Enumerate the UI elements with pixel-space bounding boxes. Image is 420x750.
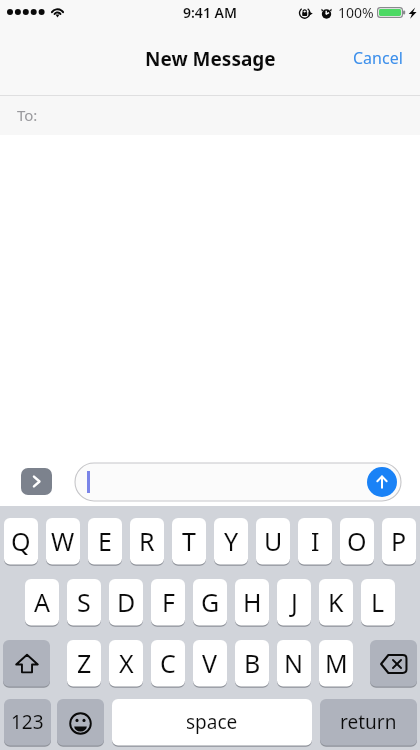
button[interactable]: 123 bbox=[4, 699, 51, 747]
button[interactable]: Q bbox=[4, 518, 38, 566]
button[interactable]: E bbox=[88, 518, 122, 566]
button[interactable]: Send bbox=[75, 463, 401, 501]
button[interactable]: C bbox=[151, 640, 185, 688]
staticText: space bbox=[186, 709, 238, 735]
button[interactable]: Delete bbox=[370, 640, 417, 688]
staticText: 9:41 AM bbox=[183, 3, 237, 22]
staticText: T bbox=[182, 524, 196, 558]
staticText: B bbox=[244, 646, 261, 680]
button[interactable]: B bbox=[235, 640, 269, 688]
staticText: Y bbox=[224, 524, 239, 558]
staticText: Cancel bbox=[353, 47, 403, 69]
button[interactable]: K bbox=[319, 579, 353, 627]
staticText: L bbox=[371, 585, 385, 619]
button[interactable]: Send bbox=[367, 467, 397, 497]
staticText: 100% bbox=[338, 3, 374, 22]
button[interactable]: F bbox=[151, 579, 185, 627]
button[interactable]: J bbox=[277, 579, 311, 627]
staticText: V bbox=[202, 646, 218, 680]
staticText: P bbox=[391, 524, 407, 558]
staticText: N bbox=[284, 646, 304, 680]
button[interactable]: I bbox=[298, 518, 332, 566]
staticText: J bbox=[291, 585, 298, 619]
button[interactable]: return bbox=[320, 699, 417, 747]
staticText: G bbox=[201, 585, 220, 619]
button[interactable]: N bbox=[277, 640, 311, 688]
button[interactable]: Emoji bbox=[57, 699, 104, 747]
staticText: W bbox=[51, 524, 75, 558]
button[interactable]: U bbox=[256, 518, 290, 566]
button[interactable]: T bbox=[172, 518, 206, 566]
button[interactable]: X bbox=[109, 640, 143, 688]
button[interactable]: V bbox=[193, 640, 227, 688]
button[interactable]: G bbox=[193, 579, 227, 627]
staticText: S bbox=[77, 585, 91, 619]
button[interactable]: Z bbox=[67, 640, 101, 688]
staticText: U bbox=[264, 524, 283, 558]
button[interactable]: S bbox=[67, 579, 101, 627]
button[interactable]: space bbox=[112, 699, 312, 747]
staticText: X bbox=[119, 646, 134, 680]
button[interactable]: M bbox=[319, 640, 353, 688]
staticText: R bbox=[139, 524, 155, 558]
staticText: I bbox=[311, 524, 320, 558]
staticText: E bbox=[98, 524, 112, 558]
button[interactable]: Cancel bbox=[336, 35, 420, 81]
button[interactable]: L bbox=[361, 579, 395, 627]
staticText: H bbox=[243, 585, 262, 619]
staticText: Q bbox=[11, 524, 31, 558]
button[interactable]: Y bbox=[214, 518, 248, 566]
staticText: A bbox=[34, 585, 50, 619]
staticText: C bbox=[160, 646, 176, 680]
staticText: Z bbox=[77, 646, 92, 680]
staticText: To: bbox=[17, 105, 38, 125]
button[interactable]: Shift bbox=[3, 640, 50, 688]
button[interactable]: D bbox=[109, 579, 143, 627]
button[interactable]: P bbox=[382, 518, 416, 566]
staticText: F bbox=[162, 585, 175, 619]
button[interactable]: H bbox=[235, 579, 269, 627]
staticText: D bbox=[117, 585, 136, 619]
staticText: return bbox=[340, 709, 397, 735]
button[interactable]: A bbox=[25, 579, 59, 627]
staticText: 123 bbox=[11, 709, 44, 735]
button[interactable]: Show apps bbox=[21, 468, 52, 495]
staticText: New Message bbox=[145, 46, 276, 72]
button[interactable]: R bbox=[130, 518, 164, 566]
button[interactable]: O bbox=[340, 518, 374, 566]
staticText: K bbox=[328, 585, 344, 619]
button[interactable]: W bbox=[46, 518, 80, 566]
staticText: M bbox=[325, 646, 348, 680]
staticText: O bbox=[347, 524, 367, 558]
button[interactable]: To: bbox=[0, 96, 420, 135]
